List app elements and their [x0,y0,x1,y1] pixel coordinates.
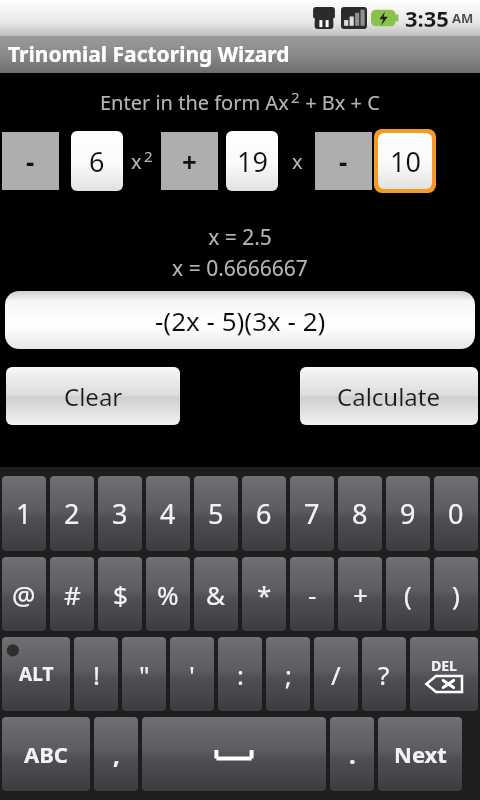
staticText: AM [452,9,474,27]
staticText: ? [378,657,390,692]
staticText: " [139,657,150,692]
button[interactable]: Delete [410,637,478,711]
staticText: - [339,144,348,179]
staticText: 2 [64,495,80,532]
staticText: Enter in the form Ax [100,89,289,116]
button[interactable]: 8 [338,476,382,551]
staticText: DEL [431,656,457,675]
staticText: + [353,577,368,612]
button[interactable]: - [2,132,59,190]
button[interactable]: ; [266,637,310,711]
button[interactable]: / [314,637,358,711]
staticText: 6 [89,143,105,180]
button[interactable]: ABC [2,717,90,791]
button[interactable]: ! [74,637,118,711]
staticText: + [182,144,197,179]
staticText: Clear [64,380,123,413]
button[interactable]: Clear [6,367,180,425]
button[interactable] [142,717,326,791]
staticText: ( [404,577,412,612]
staticText: $ [113,577,128,612]
staticText: # [64,577,81,612]
staticText: - [26,144,35,179]
staticText: ) [452,577,460,612]
staticText: , [113,738,120,771]
staticText: 0 [448,495,464,532]
button[interactable]: 5 [194,476,238,551]
staticText: 2 [144,146,153,166]
staticText: ABC [24,739,68,769]
button[interactable]: - [290,557,334,631]
staticText: 8 [352,495,368,532]
staticText: 3:35 [405,3,449,33]
staticText: ! [93,657,100,692]
staticText: + Bx + C [300,89,380,116]
button[interactable]: $ [98,557,142,631]
button[interactable]: , [94,717,138,791]
button[interactable]: ( [386,557,430,631]
button[interactable]: 19 [226,131,278,191]
button[interactable]: + [338,557,382,631]
button[interactable]: & [194,557,238,631]
staticText: x = 2.5 [0,223,480,252]
button[interactable]: * [242,557,286,631]
staticText: @ [12,577,36,612]
staticText: 7 [304,495,320,532]
button[interactable]: 7 [290,476,334,551]
button[interactable]: 6 [71,131,123,191]
button[interactable]: ? [362,637,406,711]
button[interactable]: Next [378,717,462,791]
staticText: x = 0.6666667 [0,254,480,283]
staticText: 9 [400,495,416,532]
button[interactable]: ' [170,637,214,711]
button[interactable]: ) [434,557,478,631]
staticText: 10 [390,143,421,180]
button[interactable]: . [330,717,374,791]
button[interactable]: 10 [378,133,432,189]
button[interactable]: 6 [242,476,286,551]
staticText: % [157,577,179,612]
staticText: 1 [16,495,32,532]
button[interactable]: - [315,132,372,190]
button[interactable]: ALT [2,637,70,711]
staticText: ; [285,657,292,692]
button[interactable]: # [50,557,94,631]
staticText: x [292,148,303,175]
staticText: - [308,577,317,612]
staticText: 2 [291,87,300,107]
button[interactable]: 3 [98,476,142,551]
staticText: 6 [256,495,272,532]
staticText: -(2x - 5)(3x - 2) [155,303,326,338]
button[interactable]: -(2x - 5)(3x - 2) [5,291,475,349]
staticText: Next [394,739,447,769]
button[interactable]: : [218,637,262,711]
staticText: * [257,577,272,612]
button[interactable]: 9 [386,476,430,551]
button[interactable]: 2 [50,476,94,551]
button[interactable]: + [161,132,218,190]
button[interactable]: 4 [146,476,190,551]
staticText: 4 [160,495,176,532]
staticText: Calculate [337,380,441,413]
staticText: / [331,657,341,692]
button[interactable]: Calculate [300,367,478,425]
staticText: & [206,577,226,612]
staticText: : [237,657,244,692]
staticText: 3 [112,495,128,532]
staticText: . [349,738,356,771]
button[interactable]: 0 [434,476,478,551]
staticText: 5 [208,495,224,532]
button[interactable]: " [122,637,166,711]
staticText: Trinomial Factoring Wizard [8,40,290,69]
staticText: x [131,148,142,175]
staticText: ' [189,657,195,692]
button[interactable]: 1 [2,476,46,551]
button[interactable]: % [146,557,190,631]
staticText: ALT [19,661,54,687]
staticText: 19 [237,143,268,180]
button[interactable]: @ [2,557,46,631]
